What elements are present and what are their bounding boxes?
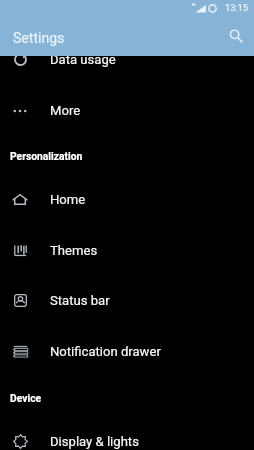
button[interactable]: More — [0, 85, 254, 136]
staticText: Home — [50, 192, 86, 207]
staticText: 13:15 — [225, 2, 248, 13]
staticText: Display & lights — [50, 434, 139, 449]
button[interactable]: Search — [223, 23, 249, 49]
button[interactable]: Data usage — [0, 34, 254, 85]
staticText: Status bar — [50, 293, 110, 308]
staticText: Personalization — [10, 150, 83, 162]
button[interactable]: Themes — [0, 225, 254, 276]
staticText: Device — [10, 392, 42, 404]
button[interactable]: Home — [0, 174, 254, 225]
staticText: Settings — [13, 30, 65, 46]
button[interactable]: Display & lights — [0, 416, 254, 450]
staticText: More — [50, 103, 81, 118]
button[interactable]: Notification drawer — [0, 326, 254, 377]
staticText: Data usage — [50, 52, 116, 67]
staticText: Themes — [50, 243, 98, 258]
staticText: Notification drawer — [50, 344, 161, 359]
button[interactable]: Status bar — [0, 275, 254, 326]
